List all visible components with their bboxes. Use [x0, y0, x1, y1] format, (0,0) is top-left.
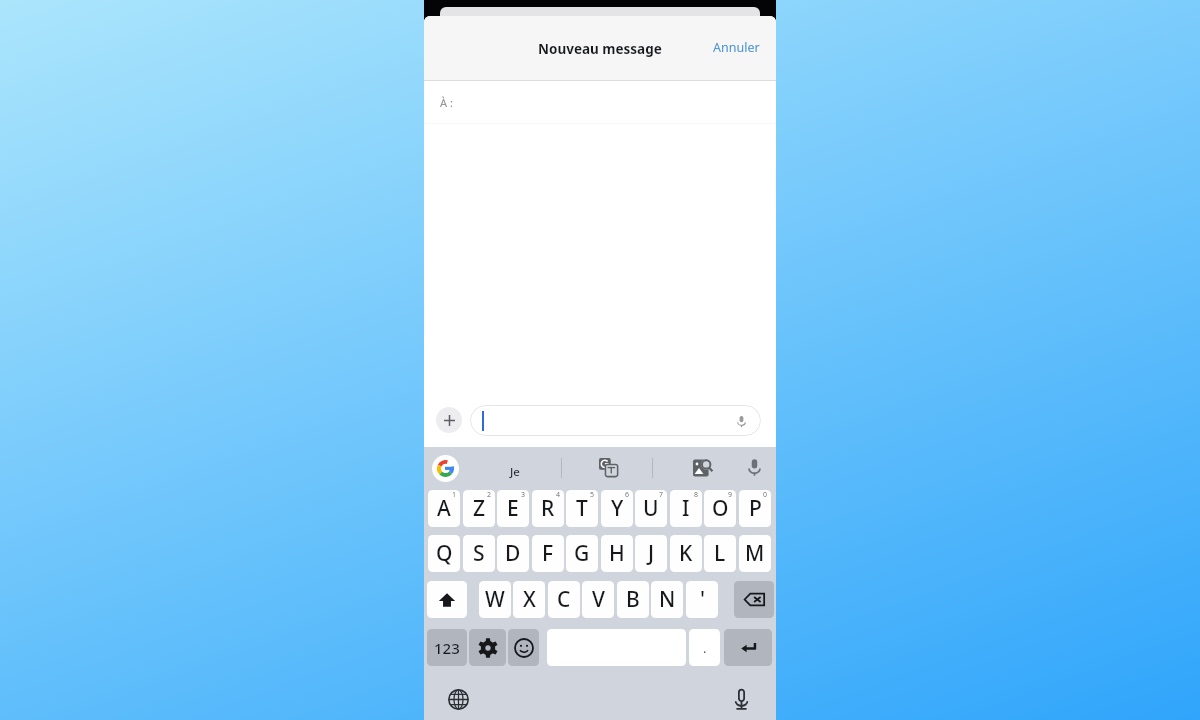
- staticText: G: [574, 539, 590, 568]
- button[interactable]: Backspace: [734, 581, 774, 618]
- button[interactable]: 123: [427, 629, 467, 666]
- staticText: M: [745, 539, 765, 568]
- staticText: 123: [434, 638, 460, 658]
- button[interactable]: L: [704, 535, 736, 572]
- staticText: W: [485, 585, 505, 614]
- staticText: 0: [763, 490, 768, 500]
- staticText: J: [648, 539, 655, 568]
- staticText: B: [626, 585, 640, 614]
- button[interactable]: G: [566, 535, 598, 572]
- button[interactable]: Stickers: [693, 458, 713, 478]
- button[interactable]: R: [532, 490, 564, 527]
- button[interactable]: Voice input: [745, 458, 764, 477]
- button[interactable]: H: [601, 535, 633, 572]
- staticText: U: [643, 494, 659, 523]
- staticText: D: [505, 539, 521, 568]
- button[interactable]: Z: [463, 490, 495, 527]
- staticText: 5: [590, 490, 595, 500]
- staticText: O: [712, 494, 729, 523]
- button[interactable]: Shift: [427, 581, 467, 618]
- button[interactable]: Google: [432, 455, 459, 482]
- button[interactable]: W: [479, 581, 511, 618]
- staticText: C: [557, 585, 571, 614]
- staticText: E: [507, 494, 519, 523]
- staticText: K: [679, 539, 693, 568]
- button[interactable]: N: [651, 581, 683, 618]
- button[interactable]: Q: [428, 535, 460, 572]
- button[interactable]: Enter: [724, 629, 772, 666]
- staticText: 9: [728, 490, 733, 500]
- button[interactable]: ': [686, 581, 718, 618]
- button[interactable]: T: [566, 490, 598, 527]
- staticText: .: [703, 639, 707, 657]
- staticText: Annuler: [713, 39, 760, 56]
- button[interactable]: Je: [490, 458, 540, 486]
- button[interactable]: J: [635, 535, 667, 572]
- staticText: 2: [487, 490, 492, 500]
- staticText: I: [682, 494, 690, 523]
- button[interactable]: A: [428, 490, 460, 527]
- button[interactable]: .: [689, 629, 720, 666]
- button[interactable]: Voice message: [729, 409, 753, 433]
- button[interactable]: U: [635, 490, 667, 527]
- staticText: 6: [625, 490, 630, 500]
- staticText: Nouveau message: [538, 40, 662, 58]
- staticText: F: [542, 539, 554, 568]
- button[interactable]: Y: [601, 490, 633, 527]
- button[interactable]: M: [739, 535, 771, 572]
- button[interactable]: Voice typing: [731, 689, 752, 710]
- button[interactable]: Emoji: [508, 629, 539, 666]
- button[interactable]: K: [670, 535, 702, 572]
- button[interactable]: À :: [424, 81, 776, 124]
- staticText: R: [541, 494, 555, 523]
- button[interactable]: B: [617, 581, 649, 618]
- staticText: À :: [440, 95, 453, 110]
- staticText: 7: [659, 490, 664, 500]
- staticText: V: [592, 585, 605, 614]
- button[interactable]: Annuler: [697, 35, 776, 60]
- button[interactable]: F: [532, 535, 564, 572]
- staticText: P: [749, 494, 762, 523]
- staticText: 1: [452, 490, 457, 500]
- staticText: Q: [436, 539, 453, 568]
- staticText: L: [714, 539, 726, 568]
- button[interactable]: Translate: [599, 458, 618, 477]
- staticText: N: [659, 585, 676, 614]
- button[interactable]: C: [548, 581, 580, 618]
- staticText: 8: [694, 490, 699, 500]
- button[interactable]: Change language: [448, 689, 469, 710]
- button[interactable]: O: [704, 490, 736, 527]
- staticText: T: [576, 494, 588, 523]
- button[interactable]: D: [497, 535, 529, 572]
- staticText: 4: [556, 490, 561, 500]
- staticText: S: [473, 539, 485, 568]
- button[interactable]: I: [670, 490, 702, 527]
- button[interactable]: S: [463, 535, 495, 572]
- button[interactable]: Add attachment: [436, 407, 462, 433]
- staticText: ': [700, 585, 705, 614]
- button[interactable]: E: [497, 490, 529, 527]
- button[interactable]: P: [739, 490, 771, 527]
- staticText: 3: [521, 490, 526, 500]
- button[interactable]: Message text field: [470, 405, 761, 436]
- staticText: A: [437, 494, 451, 523]
- button[interactable]: V: [582, 581, 614, 618]
- staticText: Y: [611, 494, 624, 523]
- staticText: H: [609, 539, 625, 568]
- button[interactable]: X: [513, 581, 545, 618]
- staticText: Z: [473, 494, 486, 523]
- button[interactable]: Keyboard settings: [469, 629, 506, 666]
- staticText: X: [523, 585, 536, 614]
- staticText: Je: [510, 464, 520, 480]
